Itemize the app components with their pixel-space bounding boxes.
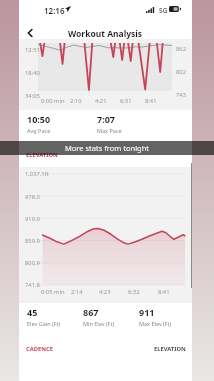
- staticText: 0:00 min: [41, 97, 65, 105]
- staticText: 5G: [159, 6, 168, 15]
- staticText: 4:23: [99, 288, 111, 296]
- staticText: 18:40: [25, 69, 40, 77]
- button[interactable]: More stats from tonight: [0, 141, 214, 155]
- staticText: 978.0: [25, 193, 40, 201]
- staticText: Max Pace: [97, 127, 122, 134]
- staticText: 6:32: [128, 288, 140, 296]
- staticText: 867: [83, 306, 99, 318]
- staticText: 911: [139, 306, 155, 318]
- staticText: 6:31: [120, 97, 132, 105]
- staticText: Max Elev (Ft): [139, 320, 172, 327]
- staticText: 45: [27, 306, 38, 318]
- staticText: Elev Gain (Ft): [27, 320, 61, 327]
- staticText: 8:41: [145, 97, 157, 105]
- staticText: 0:05 min: [41, 288, 65, 296]
- staticText: Avg Pace: [27, 127, 51, 134]
- staticText: 800.9: [25, 259, 40, 267]
- staticText: 12:51: [25, 46, 40, 54]
- staticText: 919.0: [25, 215, 40, 223]
- staticText: 7:07: [97, 113, 115, 125]
- staticText: 4:21: [95, 97, 107, 105]
- staticText: Workout Analysis: [68, 28, 143, 40]
- staticText: 8:41: [158, 288, 170, 296]
- staticText: 12:16: [44, 5, 65, 16]
- staticText: 1,037.1ft: [25, 170, 49, 178]
- staticText: 10:50: [27, 113, 51, 125]
- staticText: 741.8: [25, 281, 40, 289]
- button[interactable]: Back: [20, 23, 40, 43]
- staticText: ELEVATION: [154, 345, 186, 353]
- staticText: 859.9: [25, 237, 40, 245]
- button[interactable]: CADENCE: [26, 341, 105, 357]
- staticText: CADENCE: [26, 345, 53, 353]
- staticText: 743: [176, 91, 186, 99]
- button[interactable]: ELEVATION: [105, 341, 186, 357]
- staticText: 862: [176, 45, 186, 53]
- staticText: 2:10: [70, 97, 82, 105]
- staticText: 2:14: [71, 288, 83, 296]
- staticText: 802: [176, 68, 186, 76]
- staticText: ELEVATION: [26, 151, 58, 159]
- staticText: More stats from tonight: [65, 143, 150, 153]
- staticText: 34:05: [25, 92, 40, 100]
- staticText: Min Elev (Ft): [83, 320, 115, 327]
